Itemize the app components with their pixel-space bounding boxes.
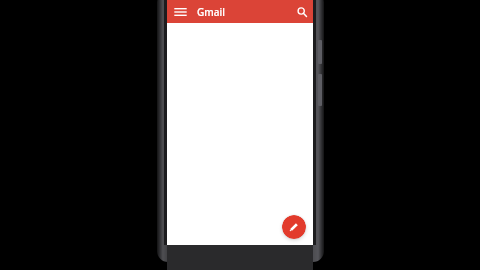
- button[interactable]: Search: [293, 3, 310, 20]
- staticText: Gmail: [197, 5, 225, 19]
- button[interactable]: Open navigation drawer: [171, 3, 189, 21]
- button[interactable]: Compose: [282, 215, 306, 239]
